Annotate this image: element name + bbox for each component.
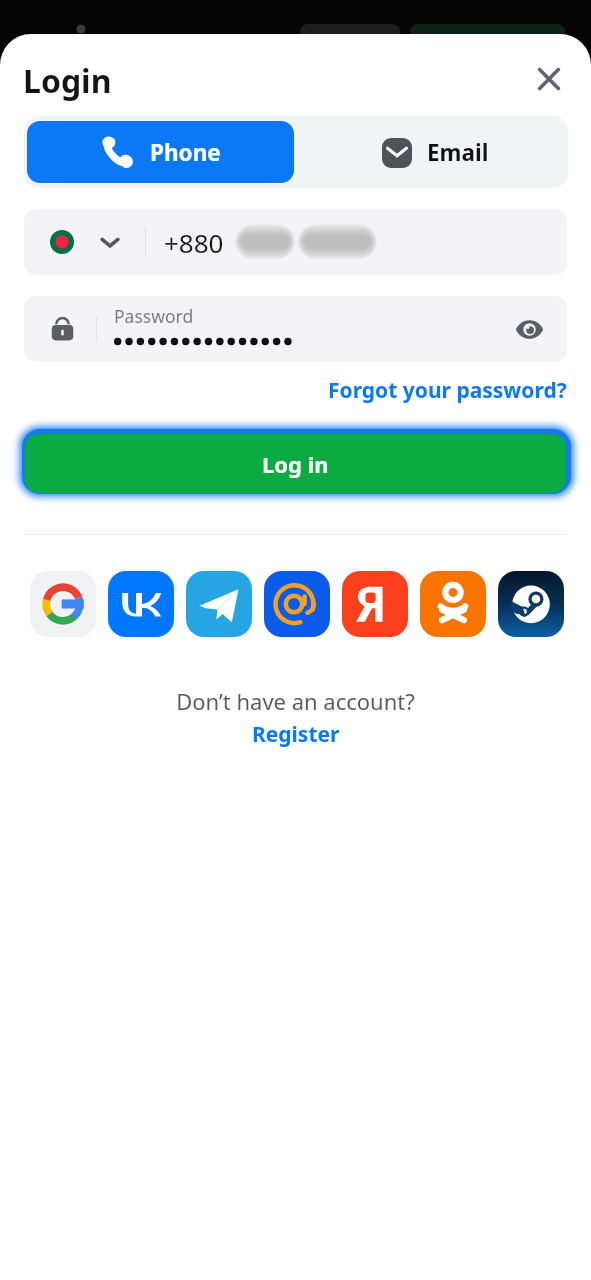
button[interactable]: Log in (25, 434, 566, 493)
staticText: Login (23, 59, 112, 103)
button[interactable]: Close (529, 59, 569, 99)
button[interactable]: Sign in with Mail.ru (264, 571, 330, 637)
button[interactable]: Forgot your password? (325, 372, 570, 409)
button[interactable]: Email (297, 116, 568, 188)
button[interactable]: Phone (27, 121, 294, 183)
button[interactable]: Sign in with VK (108, 571, 174, 637)
staticText: Password (114, 304, 194, 328)
button[interactable]: Password (24, 296, 567, 362)
button[interactable]: Sign in with Yandex (342, 571, 408, 637)
staticText: Email (427, 137, 489, 168)
staticText: +880 (164, 225, 224, 260)
staticText: Don’t have an account? (0, 686, 591, 716)
button[interactable]: Register (244, 718, 348, 751)
button[interactable]: Sign in with Google (30, 571, 96, 637)
button[interactable]: Sign in with Telegram (186, 571, 252, 637)
staticText: Log in (262, 449, 329, 479)
button[interactable]: Sign in with Odnoklassniki (420, 571, 486, 637)
button[interactable]: Sign in with Steam (498, 571, 564, 637)
staticText: Phone (150, 137, 221, 168)
button[interactable]: Show password (505, 305, 553, 353)
button[interactable]: +880 (24, 209, 567, 275)
